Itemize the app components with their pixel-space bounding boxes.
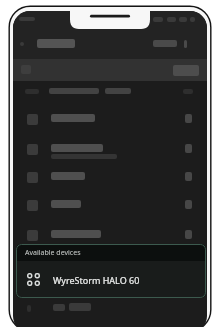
other: Cast to device bbox=[27, 273, 40, 286]
staticText: Available devices bbox=[25, 248, 81, 258]
button[interactable]: Cast to device bbox=[16, 261, 206, 298]
staticText: WyreStorm HALO 60 bbox=[53, 274, 140, 286]
